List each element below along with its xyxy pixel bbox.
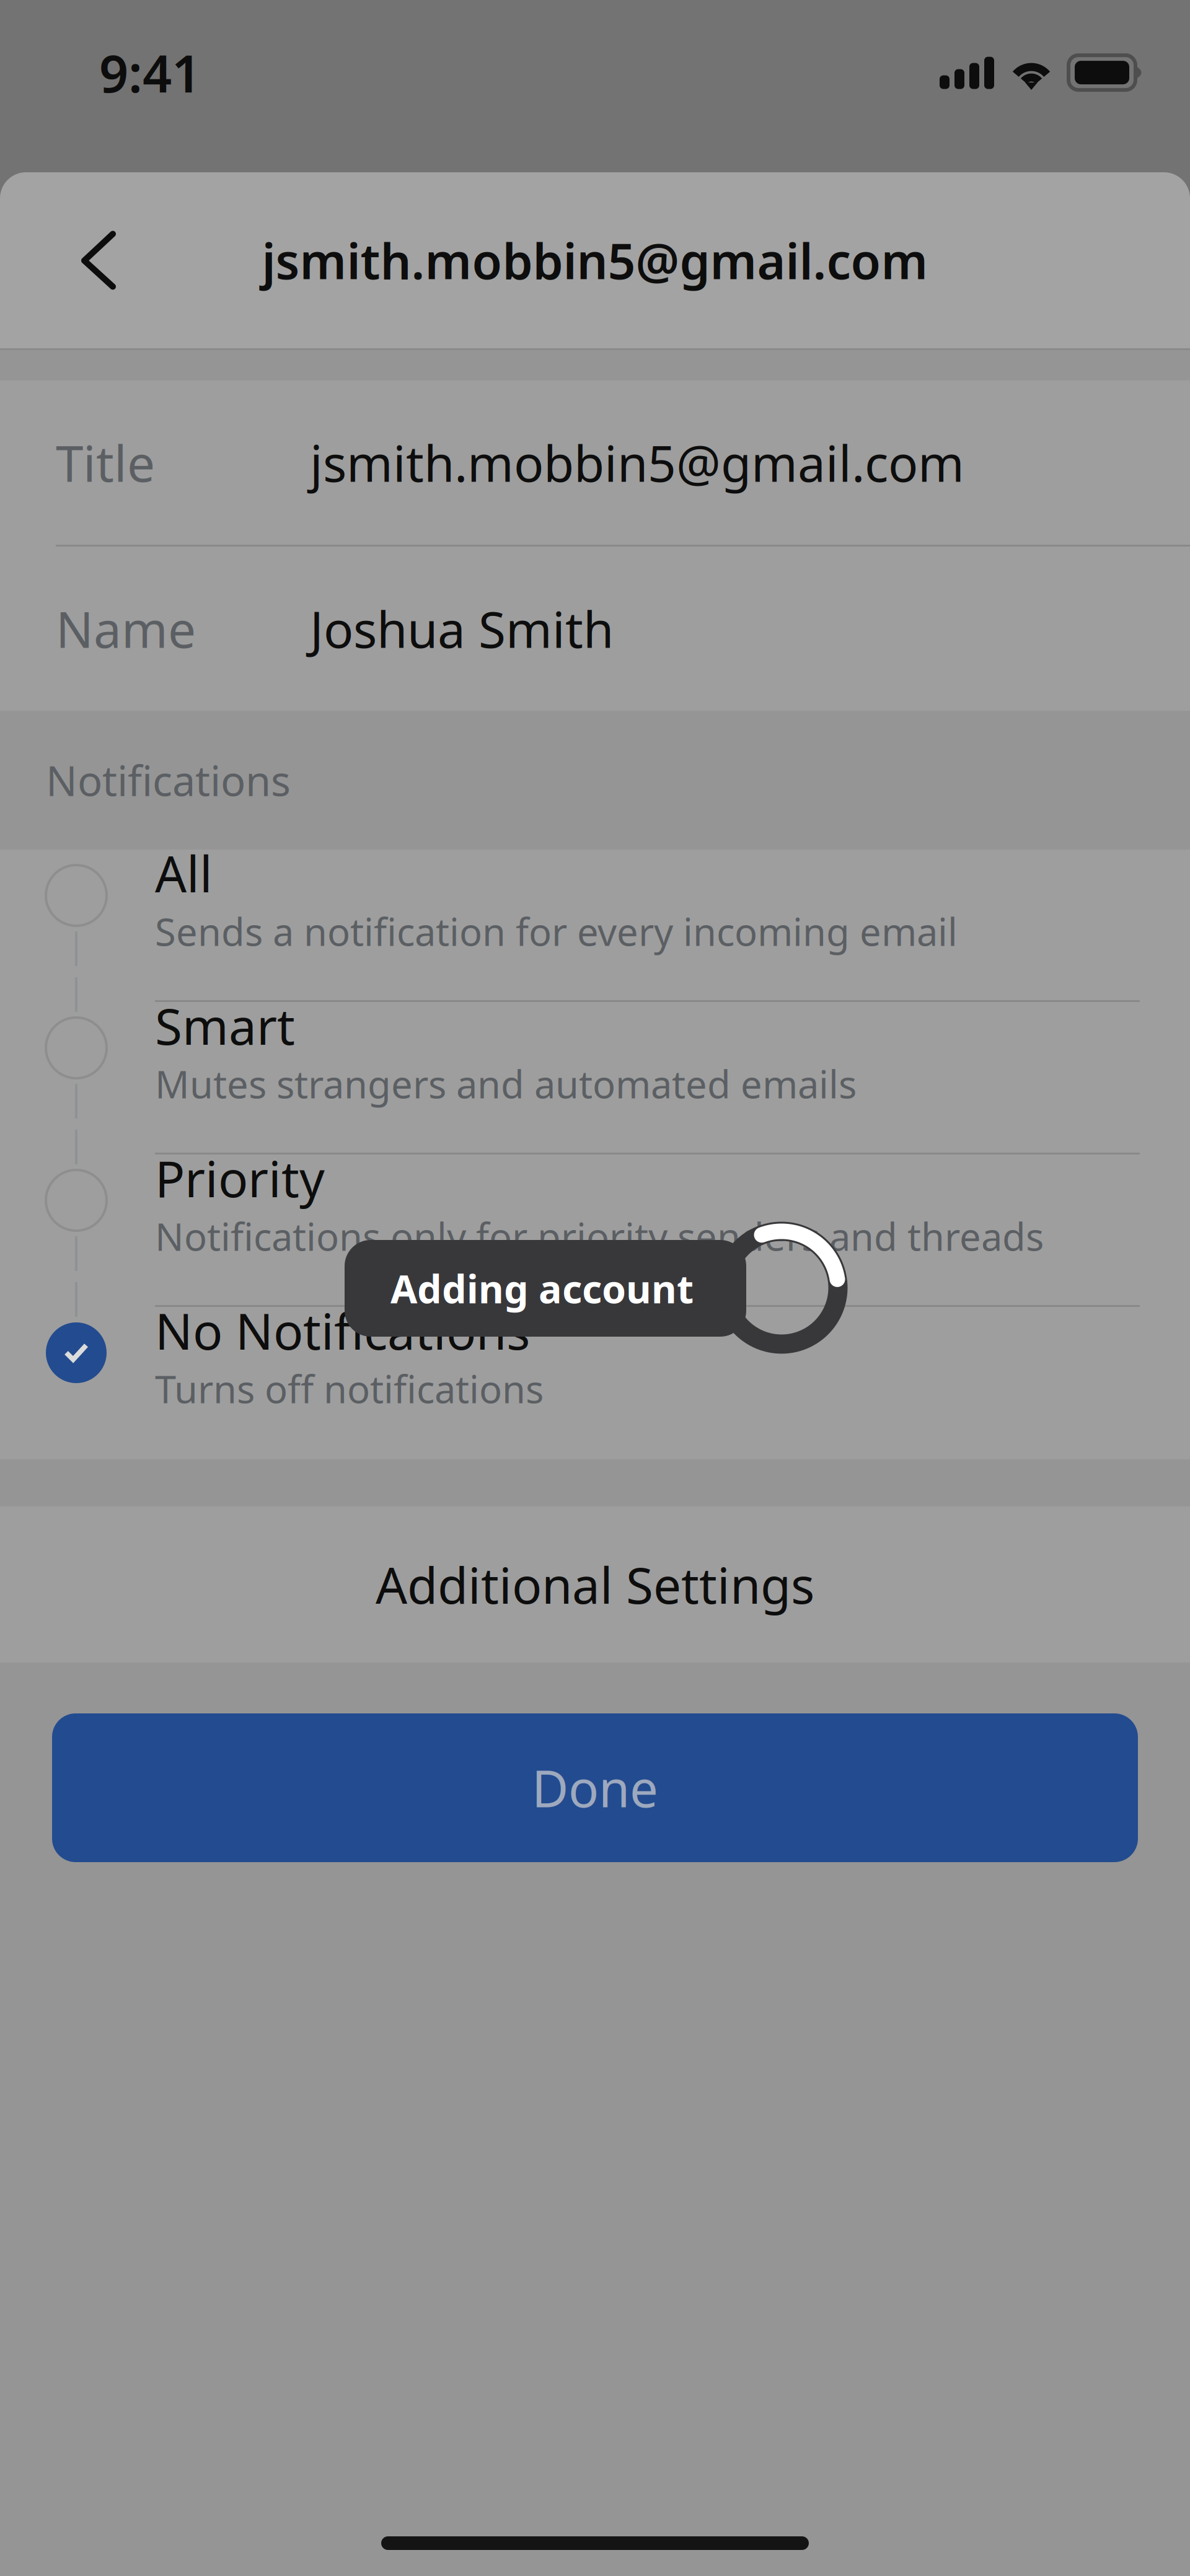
staticText: Notifications — [46, 753, 291, 808]
staticText: Additional Settings — [376, 1552, 814, 1617]
staticText: Joshua Smith — [310, 596, 614, 662]
button[interactable]: No Notifications — [0, 1307, 1190, 1459]
staticText: No Notifications — [155, 1297, 530, 1363]
staticText: Title — [56, 430, 155, 495]
button[interactable]: Priority — [0, 1154, 1190, 1307]
staticText: Mutes strangers and automated emails — [155, 1058, 857, 1109]
staticText: Priority — [155, 1145, 325, 1211]
staticText: jsmith.mobbin5@gmail.com — [310, 430, 964, 495]
staticText: Adding account — [390, 1263, 694, 1314]
staticText: jsmith.mobbin5@gmail.com — [262, 228, 928, 293]
staticText: 9:41 — [99, 39, 201, 107]
staticText: Name — [56, 596, 196, 662]
staticText: Turns off notifications — [155, 1363, 544, 1414]
button[interactable]: Done — [0, 1663, 1190, 1862]
button[interactable]: Additional Settings — [0, 1506, 1190, 1663]
staticText: Done — [532, 1754, 658, 1821]
button[interactable]: Smart — [0, 1002, 1190, 1154]
button[interactable]: All — [0, 850, 1190, 1002]
button[interactable]: Back — [48, 203, 149, 318]
staticText: Sends a notification for every incoming … — [155, 906, 958, 956]
staticText: All — [155, 840, 213, 906]
staticText: Smart — [155, 993, 295, 1058]
staticText: Notifications only for priority senders … — [155, 1211, 1044, 1261]
